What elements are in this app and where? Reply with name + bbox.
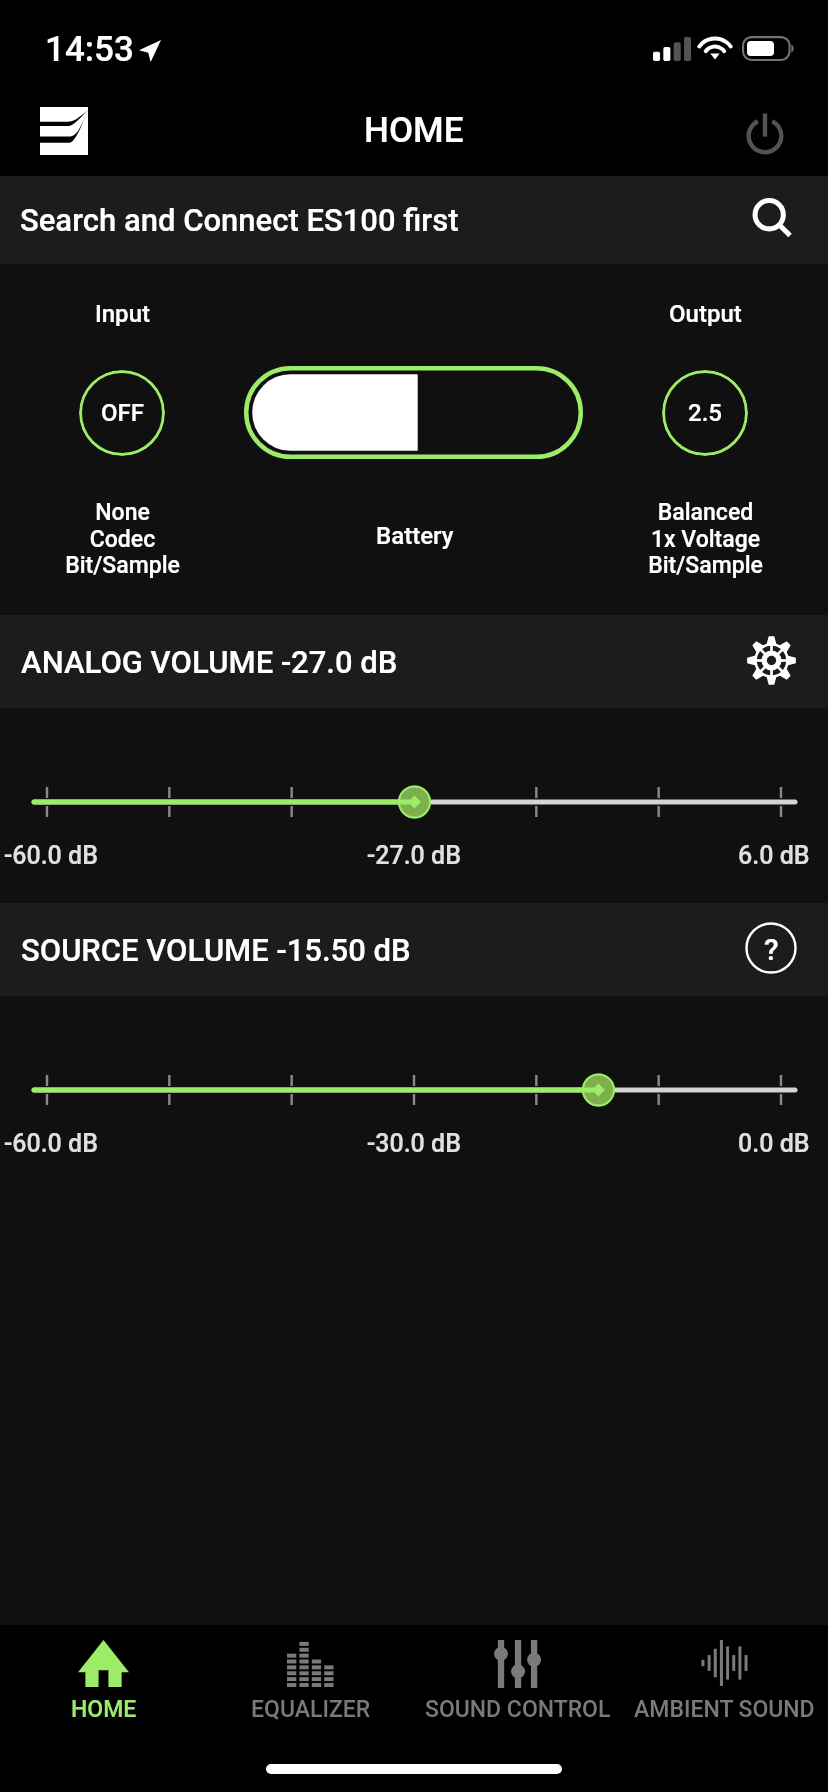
staticText: -30.0 dB — [367, 1129, 461, 1158]
staticText: ANALOG VOLUME -27.0 dB — [21, 644, 398, 680]
staticText: 14:53 — [45, 29, 134, 70]
button[interactable]: Battery level — [244, 366, 583, 459]
staticText: AMBIENT SOUND — [634, 1696, 815, 1723]
staticText: EQUALIZER — [251, 1696, 371, 1723]
button[interactable]: AMBIENT SOUND — [621, 1625, 828, 1745]
staticText: 0.0 dB — [738, 1129, 810, 1158]
staticText: HOME — [364, 110, 464, 151]
staticText: HOME — [71, 1696, 137, 1723]
staticText: -27.0 dB — [367, 841, 461, 870]
staticText: Input — [95, 300, 150, 326]
staticText: Search and Connect ES100 first — [20, 202, 459, 238]
button[interactable]: Search and Connect ES100 first — [0, 176, 828, 264]
button[interactable]: Settings — [740, 631, 802, 693]
staticText: 2.5 — [688, 399, 722, 427]
staticText: Balanced 1x Voltage Bit/Sample — [648, 499, 763, 578]
button[interactable]: Menu — [16, 88, 112, 176]
button[interactable]: SOUND CONTROL — [414, 1625, 621, 1745]
staticText: -60.0 dB — [4, 841, 98, 870]
staticText: 6.0 dB — [738, 841, 810, 870]
staticText: SOURCE VOLUME -15.50 dB — [21, 932, 411, 968]
staticText: OFF — [101, 399, 144, 427]
staticText: None Codec Bit/Sample — [65, 499, 180, 578]
button[interactable]: OFF — [79, 370, 165, 456]
button[interactable]: 2.5 — [662, 370, 748, 456]
staticText: Battery — [376, 522, 454, 550]
staticText: ? — [764, 932, 779, 967]
button[interactable]: Help — [740, 919, 802, 981]
staticText: SOUND CONTROL — [425, 1696, 611, 1723]
staticText: Output — [669, 300, 742, 326]
staticText: -60.0 dB — [4, 1129, 98, 1158]
button[interactable]: Power — [724, 88, 806, 176]
button[interactable]: EQUALIZER — [207, 1625, 414, 1745]
button[interactable]: HOME — [0, 1625, 207, 1745]
